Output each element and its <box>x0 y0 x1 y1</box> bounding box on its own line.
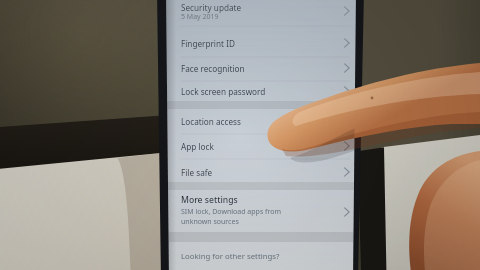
button[interactable]: Phone showing Security settings <box>0 0 480 270</box>
